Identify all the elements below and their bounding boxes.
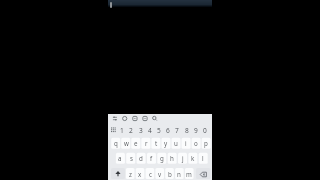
button[interactable]: r — [140, 137, 152, 149]
staticText: r — [145, 139, 148, 147]
staticText: 2 — [129, 126, 133, 135]
button[interactable]: h — [166, 152, 178, 164]
staticText: i — [185, 139, 187, 147]
button[interactable]: y — [160, 137, 172, 149]
button[interactable]: 7 — [171, 124, 183, 136]
button[interactable]: d — [135, 152, 147, 164]
staticText: n — [177, 170, 181, 178]
button[interactable]: f — [145, 152, 157, 164]
button[interactable]: g — [156, 152, 168, 164]
button[interactable]: a — [114, 152, 126, 164]
button[interactable]: 1 — [116, 124, 128, 136]
button[interactable]: m — [183, 168, 195, 180]
staticText: 0 — [203, 126, 207, 135]
staticText: k — [191, 154, 195, 162]
button[interactable]: o — [190, 137, 202, 149]
staticText: 9 — [194, 126, 198, 135]
staticText: o — [194, 139, 198, 147]
button[interactable]: 0 — [199, 124, 211, 136]
staticText: s — [130, 154, 133, 162]
staticText: d — [139, 154, 143, 162]
button[interactable]: b — [164, 168, 176, 180]
button[interactable]: p — [200, 137, 212, 149]
staticText: 8 — [185, 126, 189, 135]
button[interactable]: j — [177, 152, 189, 164]
button[interactable]: c — [144, 168, 156, 180]
button[interactable]: 8 — [181, 124, 193, 136]
button[interactable]: v — [154, 168, 166, 180]
staticText: 7 — [175, 126, 179, 135]
button[interactable]: 6 — [162, 124, 174, 136]
staticText: h — [170, 154, 174, 162]
staticText: g — [160, 154, 164, 162]
button[interactable]: 3 — [135, 124, 147, 136]
staticText: e — [134, 139, 138, 147]
button[interactable]: k — [187, 152, 199, 164]
staticText: b — [168, 170, 172, 178]
button[interactable]: u — [170, 137, 182, 149]
staticText: a — [118, 154, 122, 162]
button[interactable] — [108, 0, 212, 7]
staticText: p — [204, 139, 208, 147]
button[interactable]: z — [124, 168, 136, 180]
button[interactable]: q — [110, 137, 122, 149]
staticText: y — [164, 139, 168, 147]
staticText: l — [202, 154, 204, 162]
button[interactable]: 9 — [190, 124, 202, 136]
staticText: t — [155, 139, 158, 147]
staticText: 4 — [148, 126, 152, 135]
staticText: 3 — [139, 126, 143, 135]
button[interactable]: s — [125, 152, 137, 164]
staticText: z — [129, 170, 132, 178]
button[interactable]: l — [197, 152, 209, 164]
button[interactable]: t — [150, 137, 162, 149]
button[interactable]: 1 — [108, 114, 212, 180]
staticText: 5 — [157, 126, 161, 135]
staticText: m — [186, 170, 192, 178]
button[interactable]: w — [120, 137, 132, 149]
staticText: x — [138, 170, 142, 178]
button[interactable]: 5 — [153, 124, 165, 136]
staticText: f — [150, 154, 153, 162]
button[interactable]: e — [130, 137, 142, 149]
button[interactable]: 2 — [125, 124, 137, 136]
staticText: q — [114, 139, 118, 147]
button[interactable]: n — [173, 168, 185, 180]
staticText: w — [124, 139, 129, 147]
staticText: c — [149, 170, 152, 178]
staticText: j — [182, 154, 184, 162]
staticText: u — [174, 139, 178, 147]
staticText: 6 — [166, 126, 170, 135]
button[interactable]: 4 — [144, 124, 156, 136]
staticText: 1 — [120, 126, 124, 135]
staticText: v — [158, 170, 162, 178]
button[interactable]: i — [180, 137, 192, 149]
button[interactable]: x — [134, 168, 146, 180]
